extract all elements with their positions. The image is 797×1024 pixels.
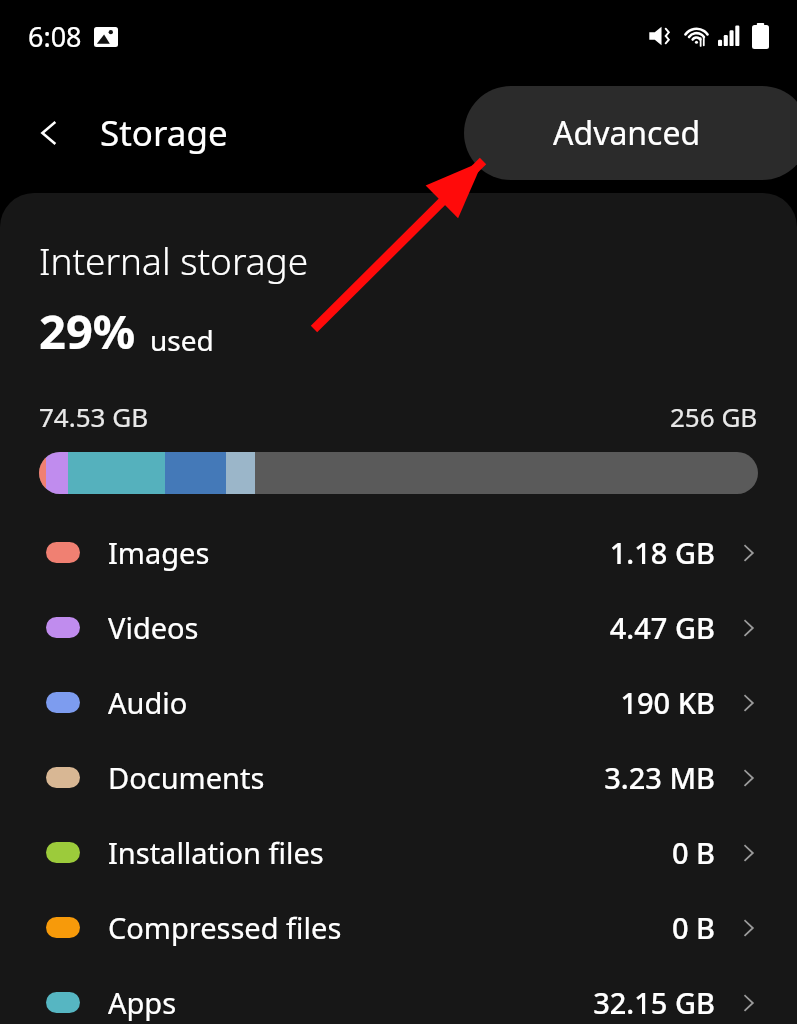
- button[interactable]: Documents: [0, 757, 797, 798]
- staticText: Videos: [108, 608, 199, 647]
- staticText: Documents: [108, 758, 265, 797]
- staticText: 256 GB: [670, 399, 758, 434]
- staticText: 32.15 GB: [593, 983, 715, 1022]
- staticText: Compressed files: [108, 908, 342, 947]
- staticText: Audio: [108, 683, 188, 722]
- staticText: 3.23 MB: [604, 758, 715, 797]
- staticText: 4.47 GB: [609, 608, 715, 647]
- button[interactable]: Videos: [0, 607, 797, 648]
- staticText: Apps: [108, 983, 177, 1022]
- staticText: used: [150, 321, 214, 359]
- staticText: 1.18 GB: [609, 533, 715, 572]
- button[interactable]: Advanced: [464, 86, 797, 180]
- button[interactable]: Apps: [0, 982, 797, 1023]
- button[interactable]: Back: [22, 110, 76, 156]
- staticText: 74.53 GB: [39, 399, 149, 434]
- staticText: 0 B: [671, 833, 715, 872]
- staticText: Installation files: [108, 833, 324, 872]
- staticText: 6:08: [28, 18, 82, 55]
- button[interactable]: Images: [0, 532, 797, 573]
- staticText: 0 B: [671, 908, 715, 947]
- button[interactable]: Compressed files: [0, 907, 797, 948]
- staticText: 190 KB: [620, 683, 715, 722]
- staticText: Images: [108, 533, 210, 572]
- staticText: 29%: [39, 299, 136, 363]
- button[interactable]: Audio: [0, 682, 797, 723]
- staticText: Advanced: [553, 111, 701, 155]
- staticText: Storage: [100, 109, 228, 157]
- staticText: Internal storage: [39, 235, 309, 285]
- button[interactable]: Installation files: [0, 832, 797, 873]
